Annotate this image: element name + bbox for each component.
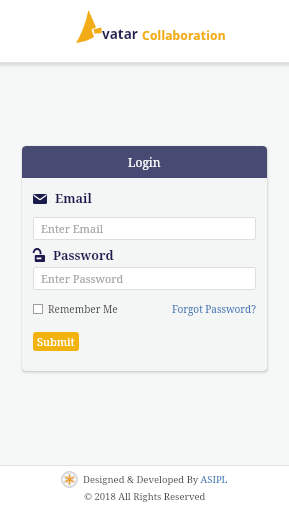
staticText: Remember Me bbox=[48, 302, 118, 316]
staticText: Enter Password bbox=[41, 271, 124, 286]
button[interactable]: Designed & Developed By ASIPL bbox=[83, 473, 228, 486]
staticText: vatar bbox=[102, 25, 138, 43]
button[interactable]: Enter Email bbox=[33, 217, 256, 240]
staticText: Submit bbox=[37, 334, 75, 349]
staticText: Enter Email bbox=[41, 221, 104, 236]
button[interactable]: Remember Me bbox=[33, 302, 118, 316]
staticText: © 2018 All Rights Reserved bbox=[84, 490, 206, 503]
button[interactable]: Submit bbox=[33, 332, 79, 351]
button[interactable]: Forgot Password? bbox=[172, 302, 256, 316]
button[interactable]: Enter Password bbox=[33, 267, 256, 290]
staticText: Login bbox=[128, 154, 161, 170]
staticText: Password bbox=[53, 247, 114, 264]
staticText: Collaboration bbox=[142, 27, 226, 43]
staticText: Email bbox=[55, 190, 92, 207]
